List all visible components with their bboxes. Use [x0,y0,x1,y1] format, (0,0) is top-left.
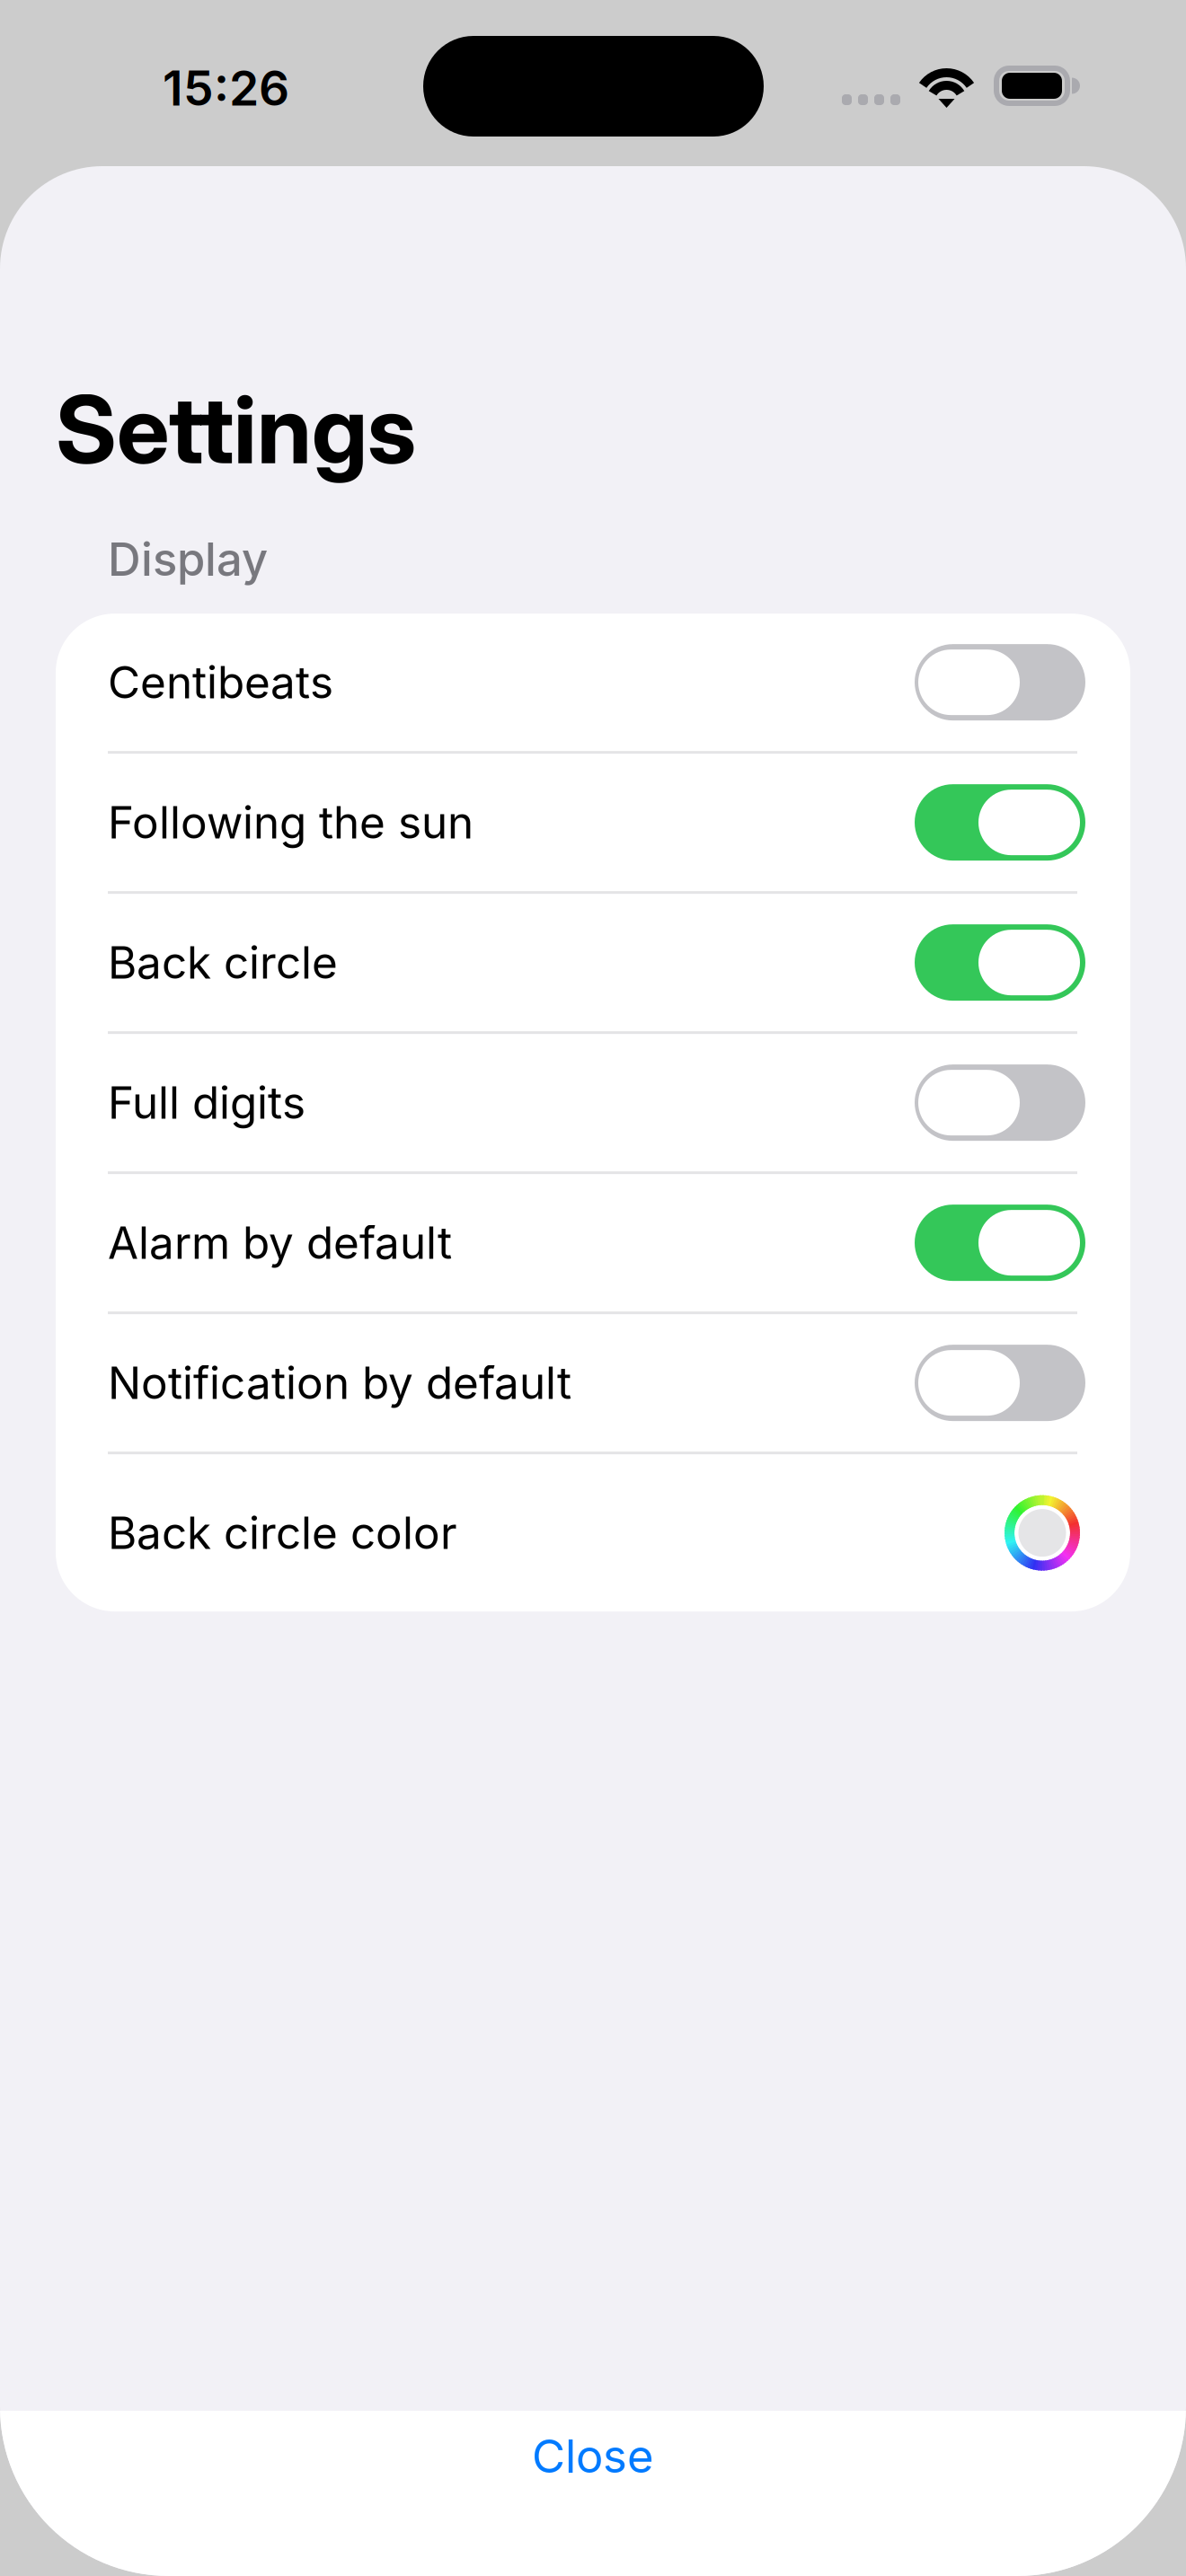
staticText: Alarm by default [108,1216,452,1270]
staticText: Centibeats [108,655,333,709]
button[interactable]: Close [0,2411,1186,2576]
staticText: 15:26 [163,59,289,117]
button[interactable]: Full digits [56,1034,1130,1171]
button[interactable]: Centibeats [56,614,1130,751]
button[interactable]: Notification by default [56,1314,1130,1452]
staticText: Following the sun [108,796,474,849]
staticText: Back circle color [108,1506,457,1560]
staticText: Full digits [108,1076,305,1129]
button[interactable]: Alarm by default [56,1174,1130,1311]
staticText: Display [108,532,268,587]
staticText: Notification by default [108,1356,571,1410]
button[interactable]: Back circle [56,894,1130,1031]
staticText: Close [532,2429,654,2484]
button[interactable]: Back circle color [56,1454,1130,1611]
staticText: Back circle [108,936,338,989]
staticText: Settings [56,373,416,486]
button[interactable]: Following the sun [56,754,1130,891]
